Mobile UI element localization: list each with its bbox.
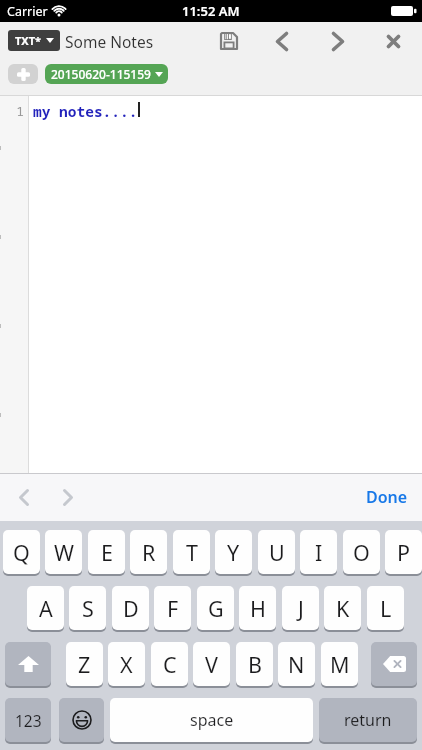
button[interactable]: C	[151, 642, 188, 686]
staticText: N	[288, 650, 305, 679]
button[interactable]: U	[258, 530, 295, 574]
button[interactable]: M	[321, 642, 358, 686]
staticText: E	[101, 538, 113, 567]
staticText: S	[82, 594, 94, 623]
button[interactable]: Done	[366, 486, 408, 508]
staticText: P	[397, 538, 411, 567]
button[interactable]: D	[112, 586, 149, 630]
button[interactable]	[321, 24, 355, 58]
button[interactable]: A	[27, 586, 64, 630]
button[interactable]: K	[324, 586, 361, 630]
button[interactable]: TXT*	[8, 30, 60, 51]
staticText: 1	[0, 102, 24, 120]
staticText: 123	[15, 710, 42, 731]
button[interactable]: X	[108, 642, 145, 686]
button[interactable]: F	[154, 586, 191, 630]
button[interactable]: S	[69, 586, 106, 630]
button[interactable]: B	[236, 642, 273, 686]
staticText: Some Notes	[65, 31, 154, 52]
staticText: space	[190, 709, 234, 731]
staticText: Y	[227, 538, 240, 567]
staticText: H	[250, 594, 266, 623]
button[interactable]: L	[367, 586, 404, 630]
staticText: A	[39, 594, 53, 623]
staticText: F	[167, 594, 179, 623]
button[interactable]: E	[88, 530, 125, 574]
button[interactable]: Z	[66, 642, 103, 686]
button[interactable]	[212, 24, 246, 58]
staticText: W	[54, 538, 74, 567]
button[interactable]: 123	[5, 698, 51, 742]
button[interactable]: space	[110, 698, 313, 742]
staticText: K	[336, 594, 350, 623]
button[interactable]: O	[343, 530, 380, 574]
button[interactable]: R	[130, 530, 167, 574]
staticText: I	[315, 538, 323, 567]
staticText: 20150620-115159	[51, 66, 151, 82]
button[interactable]: I	[300, 530, 337, 574]
button[interactable]	[8, 481, 40, 513]
staticText: J	[298, 594, 304, 623]
staticText: TXT*	[15, 33, 42, 48]
button[interactable]: return	[319, 698, 417, 742]
button[interactable]	[5, 642, 51, 686]
staticText: V	[205, 650, 218, 679]
button[interactable]	[8, 64, 38, 84]
staticText: my notes....	[33, 101, 138, 121]
staticText: 11:52 AM	[182, 2, 240, 20]
button[interactable]: T	[173, 530, 210, 574]
button[interactable]: V	[193, 642, 230, 686]
staticText: T	[186, 538, 198, 567]
staticText: M	[330, 650, 350, 679]
button[interactable]: P	[385, 530, 422, 574]
staticText: C	[163, 650, 177, 679]
staticText: G	[208, 594, 224, 623]
button[interactable]: Y	[215, 530, 252, 574]
staticText: U	[269, 538, 285, 567]
button[interactable]: Q	[3, 530, 40, 574]
button[interactable]: 1	[0, 96, 422, 473]
button[interactable]	[371, 642, 417, 686]
button[interactable]: G	[197, 586, 234, 630]
button[interactable]	[52, 481, 84, 513]
staticText: D	[123, 594, 139, 623]
staticText: R	[142, 538, 156, 567]
button[interactable]: W	[45, 530, 82, 574]
staticText: L	[380, 594, 392, 623]
staticText: return	[344, 709, 392, 731]
staticText: X	[120, 650, 133, 679]
button[interactable]	[265, 24, 299, 58]
button[interactable]: N	[278, 642, 315, 686]
button[interactable]: 20150620-115159	[45, 64, 168, 84]
staticText: B	[248, 650, 262, 679]
button[interactable]: J	[282, 586, 319, 630]
button[interactable]	[376, 24, 410, 58]
staticText: Carrier	[7, 3, 48, 20]
button[interactable]	[59, 698, 104, 742]
button[interactable]: H	[239, 586, 276, 630]
staticText: Z	[78, 650, 91, 679]
staticText: O	[353, 538, 370, 567]
staticText: Done	[366, 486, 408, 508]
staticText: Q	[13, 538, 30, 567]
